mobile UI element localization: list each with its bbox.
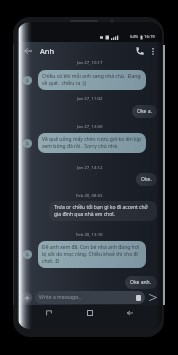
staticText: 16:19 xyxy=(144,34,155,40)
staticText: Jan 27, 11:02 xyxy=(77,95,103,101)
staticText: Jan 27, 10:17 xyxy=(77,59,103,65)
button[interactable]: Send xyxy=(147,291,159,303)
staticText: Oke anh. xyxy=(130,279,152,286)
button[interactable]: More options xyxy=(147,46,158,57)
button[interactable]: Home xyxy=(82,305,98,321)
staticText: 64% xyxy=(130,34,139,40)
staticText: Oke. xyxy=(141,176,152,183)
staticText: Trưa or chiều tối bạn gì ko đi accent ch… xyxy=(54,204,152,218)
staticText: Anh xyxy=(40,46,55,56)
staticText: Jan 27, 13:50 xyxy=(77,123,103,129)
staticText: Oke a. xyxy=(137,108,152,115)
staticText: A xyxy=(26,252,29,258)
button[interactable]: Add attachment xyxy=(21,292,32,303)
staticText: Để anh xem đã. Con bé nhà anh đang hơi b… xyxy=(42,244,142,265)
staticText: Về quê uống mấy chén rượu giờ ko lên kịp… xyxy=(42,136,142,150)
staticText: Feb 20, 13:10 xyxy=(76,231,103,237)
button[interactable]: Call xyxy=(133,44,147,58)
staticText: Feb 20, 08:53 xyxy=(76,192,103,198)
button[interactable]: Recents xyxy=(41,305,57,321)
button[interactable]: Write a message... xyxy=(35,291,145,304)
staticText: A xyxy=(26,141,29,147)
button[interactable]: Back xyxy=(122,305,138,321)
staticText: Jan 27, 14:12 xyxy=(77,164,103,170)
staticText: A xyxy=(26,78,29,84)
staticText: Chiều có khi mỗi anh sang nhà chú. Đang … xyxy=(42,73,142,87)
button[interactable]: Back xyxy=(21,44,35,58)
staticText: Write a message... xyxy=(39,294,82,301)
